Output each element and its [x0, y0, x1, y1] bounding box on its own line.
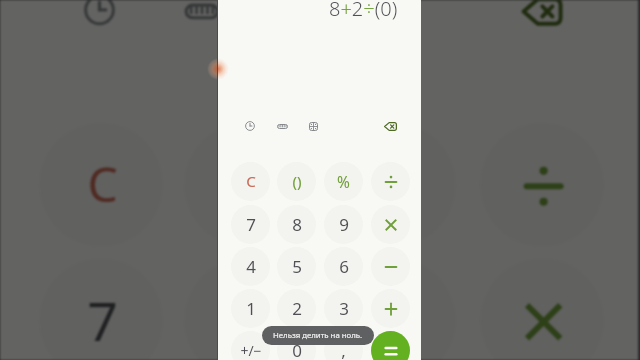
- button[interactable]: Scientific calculator: [301, 114, 325, 138]
- button[interactable]: 6: [324, 247, 363, 286]
- button[interactable]: [371, 162, 410, 201]
- staticText: ,: [341, 339, 346, 360]
- staticText: 9: [380, 284, 411, 356]
- button[interactable]: 5: [277, 247, 316, 286]
- staticText: 9: [339, 213, 349, 236]
- staticText: +/−: [240, 341, 262, 360]
- staticText: Нельзя делить на ноль.: [273, 330, 363, 341]
- button[interactable]: [371, 331, 410, 360]
- button[interactable]: Backspace: [503, 0, 578, 48]
- staticText: 4: [246, 255, 256, 278]
- button[interactable]: (): [277, 162, 316, 201]
- staticText: C: [87, 152, 118, 218]
- staticText: 2: [292, 297, 302, 320]
- staticText: 8: [292, 213, 302, 236]
- staticText: 6: [339, 255, 349, 278]
- button[interactable]: 1: [231, 289, 270, 328]
- button[interactable]: ,: [324, 331, 363, 360]
- button[interactable]: [481, 123, 603, 246]
- button[interactable]: [481, 259, 603, 360]
- button[interactable]: [371, 289, 410, 328]
- button[interactable]: [371, 205, 410, 244]
- staticText: 7: [246, 213, 256, 236]
- button[interactable]: 7: [231, 205, 270, 244]
- button[interactable]: 8: [277, 205, 316, 244]
- button[interactable]: History: [62, 0, 137, 48]
- button[interactable]: Backspace: [378, 114, 402, 138]
- button[interactable]: 0: [277, 331, 316, 360]
- staticText: (): [292, 171, 302, 192]
- button[interactable]: 3: [324, 289, 363, 328]
- button[interactable]: 8: [185, 259, 307, 360]
- staticText: 8: [232, 284, 263, 356]
- button[interactable]: 4: [231, 247, 270, 286]
- staticText: 1: [246, 297, 256, 320]
- button[interactable]: 9: [324, 205, 363, 244]
- staticText: 5: [292, 255, 302, 278]
- button[interactable]: [371, 247, 410, 286]
- staticText: 3: [339, 297, 349, 320]
- staticText: %: [337, 171, 350, 192]
- button[interactable]: Unit converter: [270, 114, 294, 138]
- button[interactable]: %: [333, 123, 455, 246]
- button[interactable]: %: [324, 162, 363, 201]
- staticText: 0: [292, 339, 302, 360]
- button[interactable]: 9: [333, 259, 455, 360]
- staticText: 7: [87, 284, 118, 356]
- button[interactable]: 2: [277, 289, 316, 328]
- staticText: %: [374, 152, 414, 218]
- button[interactable]: Unit converter: [162, 0, 238, 48]
- staticText: C: [246, 171, 256, 192]
- button[interactable]: C: [231, 162, 270, 201]
- button[interactable]: (): [185, 123, 307, 246]
- staticText: 8+2÷(0): [329, 0, 398, 22]
- button[interactable]: +/−: [231, 331, 270, 360]
- staticText: (): [232, 152, 263, 218]
- button[interactable]: C: [40, 123, 162, 246]
- button[interactable]: Scientific calculator: [260, 0, 336, 48]
- button[interactable]: History: [238, 114, 262, 138]
- button[interactable]: 7: [40, 259, 162, 360]
